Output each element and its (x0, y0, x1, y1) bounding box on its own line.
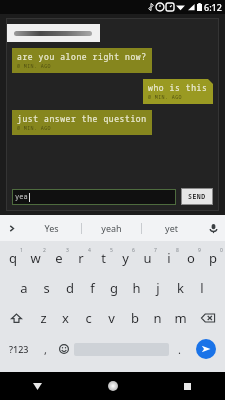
staticText: j (156, 279, 160, 297)
button[interactable]: Backspace (192, 303, 224, 333)
staticText: are you alone right now? (17, 51, 147, 62)
staticText: Yes (44, 222, 59, 234)
button[interactable]: Shift (1, 303, 32, 333)
button[interactable]: , (36, 333, 54, 365)
button[interactable]: z (32, 303, 54, 333)
staticText: i (167, 249, 171, 267)
staticText: 8 (176, 247, 179, 254)
button[interactable]: ?123 (2, 333, 36, 365)
button[interactable]: w (24, 243, 47, 273)
button[interactable]: s (35, 273, 58, 303)
staticText: 0 MIN. AGO (17, 63, 52, 70)
staticText: 0 MIN. AGO (148, 94, 183, 101)
staticText: 0 (220, 247, 223, 254)
staticText: p (209, 249, 217, 267)
staticText: v (108, 309, 115, 327)
staticText: w (30, 249, 41, 267)
button[interactable]: f (81, 273, 103, 303)
button[interactable]: SEND (181, 188, 213, 205)
staticText: 1 (20, 247, 23, 254)
staticText: g (110, 279, 118, 297)
button[interactable]: Voice input (201, 215, 225, 241)
button[interactable]: . (169, 333, 189, 365)
staticText: just answer the question (17, 113, 147, 124)
button[interactable]: i (158, 243, 180, 273)
button[interactable]: yet (142, 215, 201, 241)
button[interactable]: v (100, 303, 123, 333)
staticText: t (101, 249, 106, 267)
button[interactable]: q (1, 243, 24, 273)
staticText: r (78, 249, 84, 267)
button[interactable]: Send (189, 333, 223, 365)
button[interactable]: who is this (143, 79, 213, 104)
staticText: h (132, 279, 141, 297)
button[interactable]: Back (0, 372, 75, 400)
staticText: c (85, 309, 92, 327)
button[interactable]: r (70, 243, 92, 273)
staticText: 2 (43, 247, 46, 254)
staticText: 0 MIN. AGO (17, 125, 52, 132)
staticText: f (90, 279, 95, 297)
staticText: 7 (154, 247, 157, 254)
button[interactable]: e (47, 243, 70, 273)
button[interactable]: t (92, 243, 114, 273)
button[interactable]: just answer the question (12, 110, 152, 135)
button[interactable]: h (125, 273, 147, 303)
button[interactable]: a (12, 273, 35, 303)
button[interactable]: c (77, 303, 100, 333)
button[interactable]: Emoji (54, 333, 74, 365)
staticText: m (174, 309, 187, 327)
button[interactable]: b (123, 303, 146, 333)
button[interactable]: y (114, 243, 136, 273)
staticText: yet (165, 222, 178, 234)
staticText: 5 (110, 247, 113, 254)
button[interactable]: g (103, 273, 125, 303)
staticText: n (153, 309, 162, 327)
staticText: z (40, 309, 47, 327)
staticText: d (66, 279, 74, 297)
staticText: q (9, 249, 17, 267)
staticText: ?123 (9, 343, 29, 355)
staticText: o (187, 249, 195, 267)
staticText: 3 (66, 247, 69, 254)
staticText: k (177, 279, 184, 297)
button[interactable]: More suggestions (0, 215, 22, 241)
button[interactable]: l (191, 273, 213, 303)
staticText: SEND (188, 192, 206, 201)
staticText: s (43, 279, 50, 297)
staticText: 4 (88, 247, 91, 254)
staticText: l (200, 279, 204, 297)
button[interactable]: Recent apps (150, 372, 225, 400)
staticText: , (44, 342, 47, 357)
staticText: yeah (101, 222, 122, 234)
button[interactable]: are you alone right now? (12, 48, 152, 73)
staticText: b (131, 309, 139, 327)
button[interactable]: p (202, 243, 224, 273)
button[interactable]: Home (75, 372, 150, 400)
staticText: y (122, 249, 129, 267)
staticText: 9 (198, 247, 201, 254)
button[interactable]: yea (15, 189, 173, 205)
button[interactable] (6, 24, 100, 42)
button[interactable]: o (180, 243, 202, 273)
button[interactable]: m (169, 303, 192, 333)
button[interactable]: n (146, 303, 169, 333)
staticText: x (62, 309, 69, 327)
staticText: yea (15, 192, 28, 202)
staticText: . (178, 342, 181, 357)
button[interactable]: j (147, 273, 169, 303)
staticText: 6 (132, 247, 135, 254)
button[interactable]: Yes (22, 215, 81, 241)
button[interactable]: d (58, 273, 81, 303)
button[interactable]: yeah (82, 215, 141, 241)
button[interactable]: u (136, 243, 158, 273)
staticText: e (55, 249, 63, 267)
button[interactable]: k (169, 273, 191, 303)
staticText: who is this (148, 82, 208, 93)
button[interactable]: x (54, 303, 77, 333)
staticText: u (143, 249, 152, 267)
staticText: a (20, 279, 28, 297)
staticText: 6:12 (204, 1, 222, 13)
